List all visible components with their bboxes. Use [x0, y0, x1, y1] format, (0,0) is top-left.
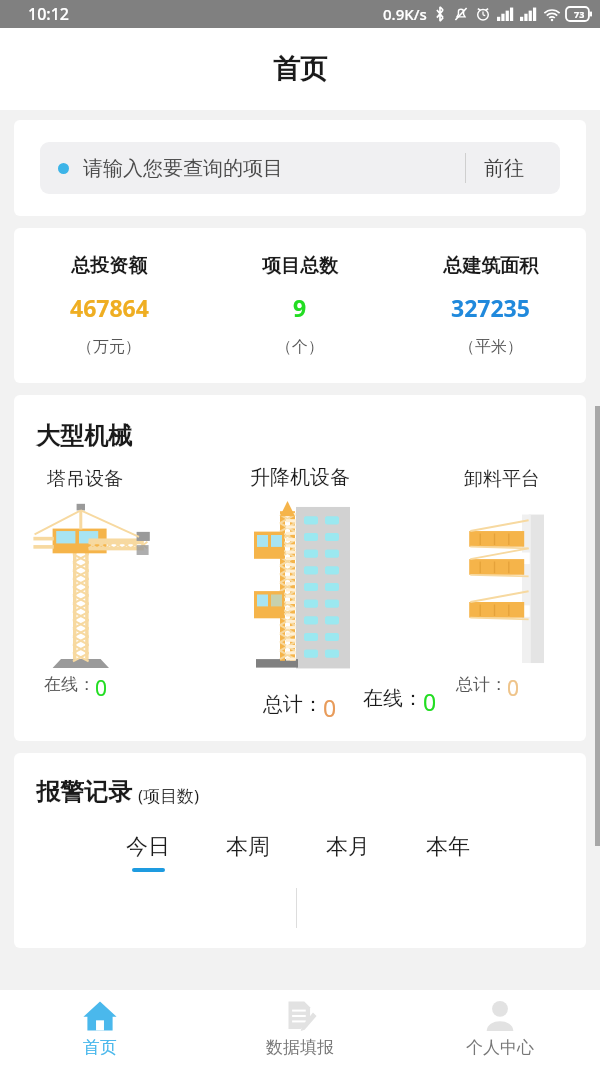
staticText: 总投资额: [71, 254, 147, 278]
staticText: 总计：: [456, 674, 507, 695]
staticText: 升降机设备: [250, 465, 350, 490]
staticText: 今日: [126, 833, 170, 861]
staticText: 0.9K/s: [383, 4, 427, 24]
staticText: 大型机械: [36, 421, 132, 451]
staticText: 卸料平台: [464, 467, 540, 491]
button[interactable]: 总建筑面积: [395, 254, 586, 357]
staticText: （平米）: [459, 337, 523, 357]
button[interactable]: 前往: [466, 156, 542, 181]
button[interactable]: 本周: [224, 833, 272, 872]
button[interactable]: 卸料平台: [456, 451, 586, 741]
staticText: 0: [323, 692, 337, 723]
button[interactable]: 请输入您要查询的项目: [40, 142, 560, 194]
staticText: 0: [507, 674, 520, 703]
staticText: （万元）: [77, 337, 141, 357]
staticText: 总建筑面积: [443, 254, 538, 278]
staticText: 项目总数: [262, 254, 338, 278]
staticText: 9: [293, 292, 307, 323]
other: 个人中心: [482, 998, 518, 1034]
staticText: （个）: [276, 337, 324, 357]
staticText: 首页: [273, 52, 327, 86]
button[interactable]: 本年: [424, 833, 472, 872]
other: 首页: [82, 998, 118, 1034]
staticText: 前往: [484, 156, 524, 181]
button[interactable]: 项目总数: [204, 254, 395, 357]
staticText: 0: [95, 674, 108, 703]
staticText: (项目数): [138, 784, 200, 807]
staticText: 请输入您要查询的项目: [83, 156, 283, 181]
button[interactable]: 个人中心: [400, 990, 600, 1067]
staticText: 在线：: [44, 674, 95, 695]
staticText: 本周: [226, 833, 270, 861]
other: 数据填报: [282, 998, 318, 1034]
staticText: 10:12: [28, 3, 69, 25]
staticText: 报警记录: [36, 777, 132, 807]
button[interactable]: 总投资额: [14, 254, 204, 357]
staticText: 本月: [326, 833, 370, 861]
staticText: 总计：: [263, 692, 323, 717]
button[interactable]: 升降机设备: [205, 451, 395, 741]
staticText: 数据填报: [266, 1037, 334, 1058]
staticText: 327235: [451, 292, 530, 323]
staticText: 本年: [426, 833, 470, 861]
staticText: 塔吊设备: [47, 467, 123, 491]
staticText: 0: [423, 686, 437, 717]
staticText: 467864: [70, 292, 149, 323]
button[interactable]: 今日: [124, 833, 172, 872]
staticText: 在线：: [363, 686, 423, 711]
staticText: 首页: [83, 1037, 117, 1058]
staticText: 个人中心: [466, 1037, 534, 1058]
button[interactable]: 首页: [0, 990, 200, 1067]
button[interactable]: 数据填报: [200, 990, 400, 1067]
button[interactable]: 本月: [324, 833, 372, 872]
staticText: 73: [574, 8, 585, 20]
button[interactable]: 塔吊设备: [14, 451, 170, 741]
